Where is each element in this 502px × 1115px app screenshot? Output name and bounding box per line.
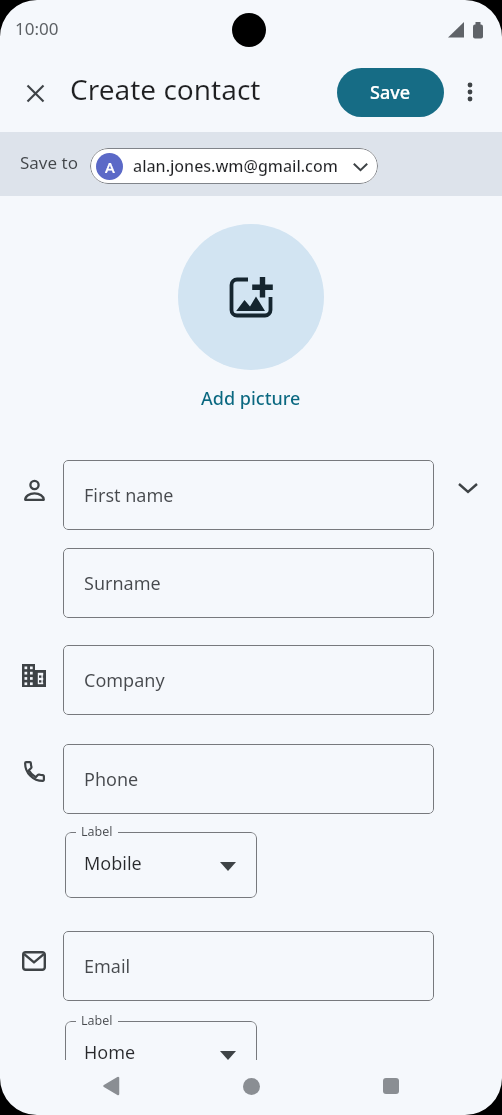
staticText: 10:00 (15, 17, 59, 40)
staticText: Save to (20, 151, 78, 174)
staticText: Save (370, 80, 411, 105)
staticText: Home (84, 1040, 136, 1065)
button[interactable] (15, 73, 55, 113)
button[interactable]: First name (63, 460, 434, 530)
staticText: Label (81, 823, 113, 840)
staticText: Add picture (201, 386, 301, 411)
staticText: alan.jones.wm@gmail.com (133, 155, 338, 177)
button[interactable]: Mobile (65, 832, 257, 898)
staticText: Surname (84, 571, 161, 596)
button[interactable] (450, 72, 490, 112)
staticText: Phone (84, 767, 139, 792)
button[interactable] (178, 224, 324, 370)
button[interactable] (91, 1066, 131, 1106)
button[interactable]: Add picture (176, 383, 326, 413)
staticText: Email (84, 954, 131, 979)
staticText: A (105, 157, 115, 177)
button[interactable]: A (90, 148, 378, 184)
button[interactable]: Home (65, 1021, 257, 1087)
button[interactable]: Surname (63, 548, 434, 618)
button[interactable]: Save (337, 68, 444, 117)
staticText: Create contact (70, 70, 261, 108)
staticText: Label (81, 1012, 113, 1029)
button[interactable] (231, 1066, 271, 1106)
button[interactable]: Company (63, 645, 434, 715)
button[interactable]: Email (63, 931, 434, 1001)
staticText: Mobile (84, 851, 142, 876)
staticText: First name (84, 483, 174, 508)
button[interactable]: Phone (63, 744, 434, 814)
button[interactable] (448, 468, 488, 508)
button[interactable] (371, 1066, 411, 1106)
staticText: Company (84, 668, 165, 693)
